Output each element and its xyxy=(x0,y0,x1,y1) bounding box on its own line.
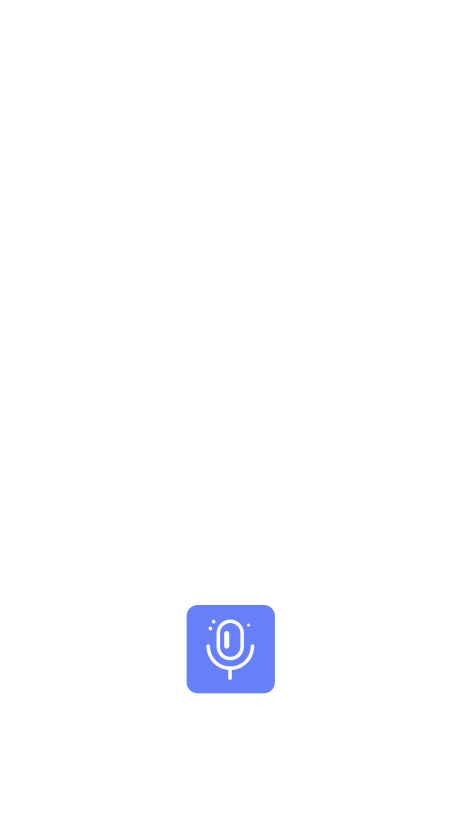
button[interactable]: Start voice recording xyxy=(187,605,275,693)
